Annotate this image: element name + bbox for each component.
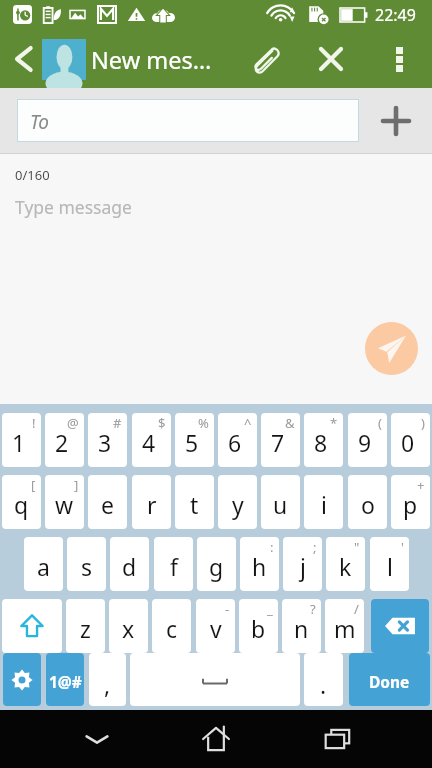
button[interactable]: Close xyxy=(307,30,355,88)
staticText: " xyxy=(354,538,360,556)
staticText: m xyxy=(334,613,356,644)
button[interactable]: 0 xyxy=(391,413,430,467)
button[interactable]: g xyxy=(197,537,236,591)
staticText: ' xyxy=(401,538,404,556)
staticText: b xyxy=(251,613,266,644)
button[interactable]: 9 xyxy=(348,413,387,467)
button[interactable]: backspace xyxy=(371,599,429,653)
button[interactable]: p xyxy=(391,475,430,529)
staticText: [ xyxy=(31,476,36,494)
staticText: w xyxy=(55,489,74,520)
button[interactable]: h xyxy=(240,537,279,591)
staticText: 2 xyxy=(55,427,69,458)
staticText: x xyxy=(122,613,135,644)
staticText: 6 xyxy=(228,427,242,458)
staticText: e xyxy=(101,489,114,520)
button[interactable]: s xyxy=(67,537,106,591)
button[interactable]: v xyxy=(196,599,235,653)
button[interactable]: t xyxy=(175,475,214,529)
staticText: Done xyxy=(369,671,410,692)
button[interactable]: r xyxy=(132,475,171,529)
button[interactable]: x xyxy=(109,599,148,653)
staticText: ( xyxy=(378,414,382,432)
button[interactable]: space xyxy=(130,653,300,706)
button[interactable]: j xyxy=(283,537,322,591)
button[interactable]: Add recipient xyxy=(359,88,432,154)
button[interactable]: w xyxy=(45,475,84,529)
button[interactable]: b xyxy=(239,599,278,653)
button[interactable]: 7 xyxy=(261,413,300,467)
button[interactable]: d xyxy=(110,537,149,591)
staticText: u xyxy=(273,489,288,520)
staticText: 5 xyxy=(185,427,199,458)
button[interactable]: z xyxy=(66,599,105,653)
staticText: h xyxy=(252,551,267,582)
button[interactable]: , xyxy=(89,653,126,706)
staticText: a xyxy=(37,551,50,582)
button[interactable]: Attach xyxy=(240,30,288,88)
staticText: % xyxy=(198,414,209,432)
button[interactable]: Hide keyboard xyxy=(52,710,142,768)
button[interactable]: i xyxy=(304,475,343,529)
staticText: f xyxy=(170,551,178,582)
button[interactable]: 6 xyxy=(218,413,257,467)
staticText: 1@# xyxy=(49,671,82,692)
button[interactable]: Recent apps xyxy=(293,710,383,768)
button[interactable]: 5 xyxy=(175,413,214,467)
staticText: s xyxy=(81,551,93,582)
button[interactable]: 3 xyxy=(88,413,127,467)
staticText: 4 xyxy=(142,427,156,458)
button[interactable]: shift xyxy=(2,599,62,653)
button[interactable]: 4 xyxy=(132,413,171,467)
staticText: n xyxy=(294,613,309,644)
staticText: * xyxy=(330,414,338,432)
staticText: z xyxy=(80,613,91,644)
staticText: t xyxy=(190,489,199,520)
staticText: Type message xyxy=(15,195,132,219)
staticText: i xyxy=(321,489,327,520)
button[interactable]: 8 xyxy=(304,413,343,467)
button[interactable]: . xyxy=(304,653,343,706)
button[interactable]: gear xyxy=(3,653,41,706)
staticText: ? xyxy=(310,600,316,618)
button[interactable]: m xyxy=(325,599,364,653)
button[interactable]: a xyxy=(24,537,63,591)
staticText: q xyxy=(14,489,29,520)
staticText: r xyxy=(147,489,157,520)
staticText: p xyxy=(403,489,418,520)
button[interactable]: l xyxy=(370,537,409,591)
staticText: 3 xyxy=(98,427,112,458)
staticText: : xyxy=(270,538,274,556)
button[interactable]: To xyxy=(17,99,359,142)
button[interactable]: Home xyxy=(171,710,261,768)
staticText: - xyxy=(225,600,230,618)
staticText: . xyxy=(320,669,327,700)
button[interactable]: 1@# xyxy=(46,653,84,706)
button[interactable]: Send xyxy=(365,322,418,375)
button[interactable]: o xyxy=(348,475,387,529)
staticText: y xyxy=(232,489,244,520)
staticText: + xyxy=(417,476,425,494)
staticText: j xyxy=(300,551,306,582)
staticText: , xyxy=(104,669,111,700)
staticText: ! xyxy=(32,414,36,432)
button[interactable]: n xyxy=(282,599,321,653)
button[interactable]: f xyxy=(154,537,193,591)
staticText: _ xyxy=(267,600,273,618)
staticText: ^ xyxy=(244,414,252,432)
button[interactable]: Done xyxy=(349,653,430,706)
staticText: & xyxy=(285,414,295,432)
button[interactable]: e xyxy=(88,475,127,529)
button[interactable]: y xyxy=(218,475,257,529)
staticText: d xyxy=(122,551,137,582)
staticText: ] xyxy=(74,476,79,494)
button[interactable]: q xyxy=(2,475,41,529)
button[interactable]: 1 xyxy=(2,413,41,467)
staticText: g xyxy=(209,551,224,582)
button[interactable]: 2 xyxy=(45,413,84,467)
button[interactable]: Back xyxy=(2,30,44,88)
button[interactable]: c xyxy=(152,599,191,653)
button[interactable]: u xyxy=(261,475,300,529)
button[interactable]: k xyxy=(326,537,365,591)
button[interactable]: More options xyxy=(378,30,420,88)
